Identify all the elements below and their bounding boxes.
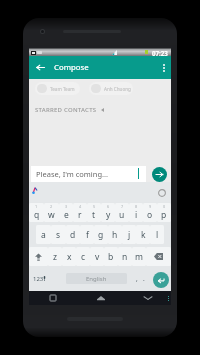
button[interactable]: Keyboard settings — [158, 189, 166, 197]
staticText: 0 — [163, 204, 166, 209]
staticText: 07:23 — [152, 49, 168, 57]
staticText: f — [86, 229, 89, 241]
button[interactable]: Back — [30, 56, 52, 79]
staticText: 4 — [79, 204, 82, 209]
staticText: Compose — [54, 62, 89, 73]
staticText: 6 — [107, 204, 110, 209]
staticText: h — [112, 229, 118, 241]
staticText: m — [135, 251, 143, 263]
button[interactable]: More options — [150, 56, 171, 79]
staticText: k — [141, 229, 146, 241]
staticText: 123 — [33, 275, 44, 283]
staticText: r — [78, 209, 82, 221]
staticText: 3 — [65, 204, 68, 209]
staticText: p — [161, 209, 167, 221]
button[interactable]: Shift — [29, 247, 48, 266]
button[interactable]: Recents — [29, 291, 77, 305]
staticText: Anh Chuong IMP — [104, 86, 132, 92]
staticText: English — [86, 275, 107, 283]
button[interactable]: 1 — [29, 203, 44, 222]
button[interactable]: Team Team — [35, 82, 80, 95]
button[interactable]: Backspace — [146, 247, 171, 266]
button[interactable]: c — [76, 247, 90, 266]
staticText: e — [64, 209, 69, 221]
button[interactable]: English — [66, 273, 127, 284]
staticText: z — [53, 251, 57, 263]
staticText: w — [48, 209, 55, 221]
button[interactable]: 0 — [157, 203, 171, 222]
staticText: b — [108, 251, 114, 263]
staticText: , — [136, 274, 138, 283]
staticText: 2 — [50, 204, 53, 209]
staticText: c — [81, 251, 86, 263]
button[interactable]: 3 — [59, 203, 73, 222]
staticText: 7 — [121, 204, 124, 209]
staticText: 8 — [135, 204, 138, 209]
staticText: n — [122, 251, 128, 263]
button[interactable]: m — [132, 247, 146, 266]
button[interactable]: Anh Chuong IMP — [89, 82, 133, 95]
button[interactable]: Enter — [153, 272, 169, 288]
button[interactable]: j — [122, 225, 136, 244]
staticText: t — [92, 209, 96, 221]
button[interactable]: k — [136, 225, 150, 244]
staticText: y — [106, 209, 111, 221]
button[interactable]: z — [48, 247, 62, 266]
button[interactable]: Comma — [139, 268, 149, 289]
button[interactable]: Home — [77, 291, 124, 305]
staticText: j — [128, 229, 131, 241]
button[interactable]: Period — [132, 268, 142, 289]
staticText: . — [143, 274, 145, 283]
button[interactable]: 6 — [101, 203, 115, 222]
staticText: Please, I'm coming... — [36, 169, 109, 179]
button[interactable]: 4 — [73, 203, 87, 222]
button[interactable]: 9 — [143, 203, 157, 222]
button[interactable]: v — [90, 247, 104, 266]
staticText: 5 — [93, 204, 96, 209]
staticText: s — [56, 229, 61, 241]
button[interactable]: f — [80, 225, 94, 244]
button[interactable]: n — [118, 247, 132, 266]
staticText: x — [67, 251, 72, 263]
staticText: i — [135, 209, 138, 221]
staticText: 1 — [35, 204, 38, 209]
staticText: q — [34, 209, 40, 221]
button[interactable]: 2 — [44, 203, 59, 222]
staticText: a — [41, 229, 46, 241]
staticText: o — [147, 209, 153, 221]
staticText: u — [119, 209, 125, 221]
button[interactable]: 5 — [87, 203, 101, 222]
staticText: v — [95, 251, 100, 263]
staticText: l — [156, 229, 159, 241]
staticText: g — [98, 229, 104, 241]
button[interactable]: 8 — [129, 203, 143, 222]
button[interactable]: Back — [124, 291, 171, 305]
button[interactable]: 7 — [115, 203, 129, 222]
button[interactable]: Send — [152, 167, 167, 182]
button[interactable]: s — [51, 225, 66, 244]
button[interactable]: b — [104, 247, 118, 266]
button[interactable]: d — [66, 225, 80, 244]
button[interactable]: g — [94, 225, 108, 244]
button[interactable]: 123 — [31, 268, 51, 289]
button[interactable]: Please, I'm coming... — [31, 166, 146, 182]
button[interactable]: h — [108, 225, 122, 244]
button[interactable]: x — [62, 247, 76, 266]
staticText: Team Team — [50, 86, 75, 92]
button[interactable]: l — [150, 225, 164, 244]
button[interactable]: a — [36, 225, 51, 244]
staticText: STARRED CONTACTS — [35, 106, 97, 114]
staticText: d — [70, 229, 76, 241]
staticText: 9 — [149, 204, 152, 209]
